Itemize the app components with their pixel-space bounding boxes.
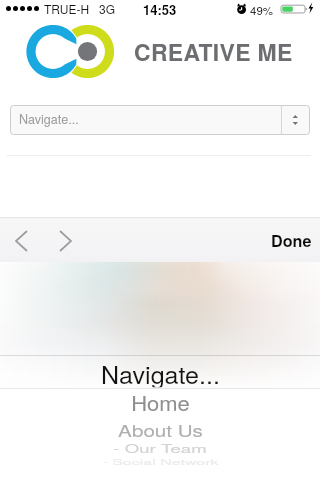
- button[interactable]: - Social Network: [0, 446, 320, 478]
- staticText: Navigate...: [101, 357, 220, 387]
- staticText: About Us: [118, 418, 203, 440]
- staticText: 49%: [250, 2, 274, 18]
- button[interactable]: Done: [271, 229, 312, 252]
- staticText: Done: [271, 229, 312, 252]
- staticText: 14:53: [143, 0, 177, 16]
- button[interactable]: Forward: [49, 222, 82, 259]
- button[interactable]: - Our Team: [0, 432, 320, 464]
- staticText: TRUE-H: [44, 0, 90, 16]
- staticText: 3G: [99, 0, 116, 16]
- staticText: Home: [131, 389, 190, 417]
- staticText: CREATIVE ME: [134, 35, 293, 68]
- button[interactable]: Navigate...: [10, 105, 310, 135]
- button[interactable]: About Us: [0, 413, 320, 445]
- staticText: - Our Team: [113, 440, 207, 457]
- button[interactable]: Back: [5, 222, 38, 259]
- staticText: Navigate...: [19, 110, 79, 128]
- button[interactable]: Home: [0, 387, 320, 419]
- button[interactable]: Navigate...: [0, 356, 320, 388]
- staticText: - Social Network: [102, 457, 219, 468]
